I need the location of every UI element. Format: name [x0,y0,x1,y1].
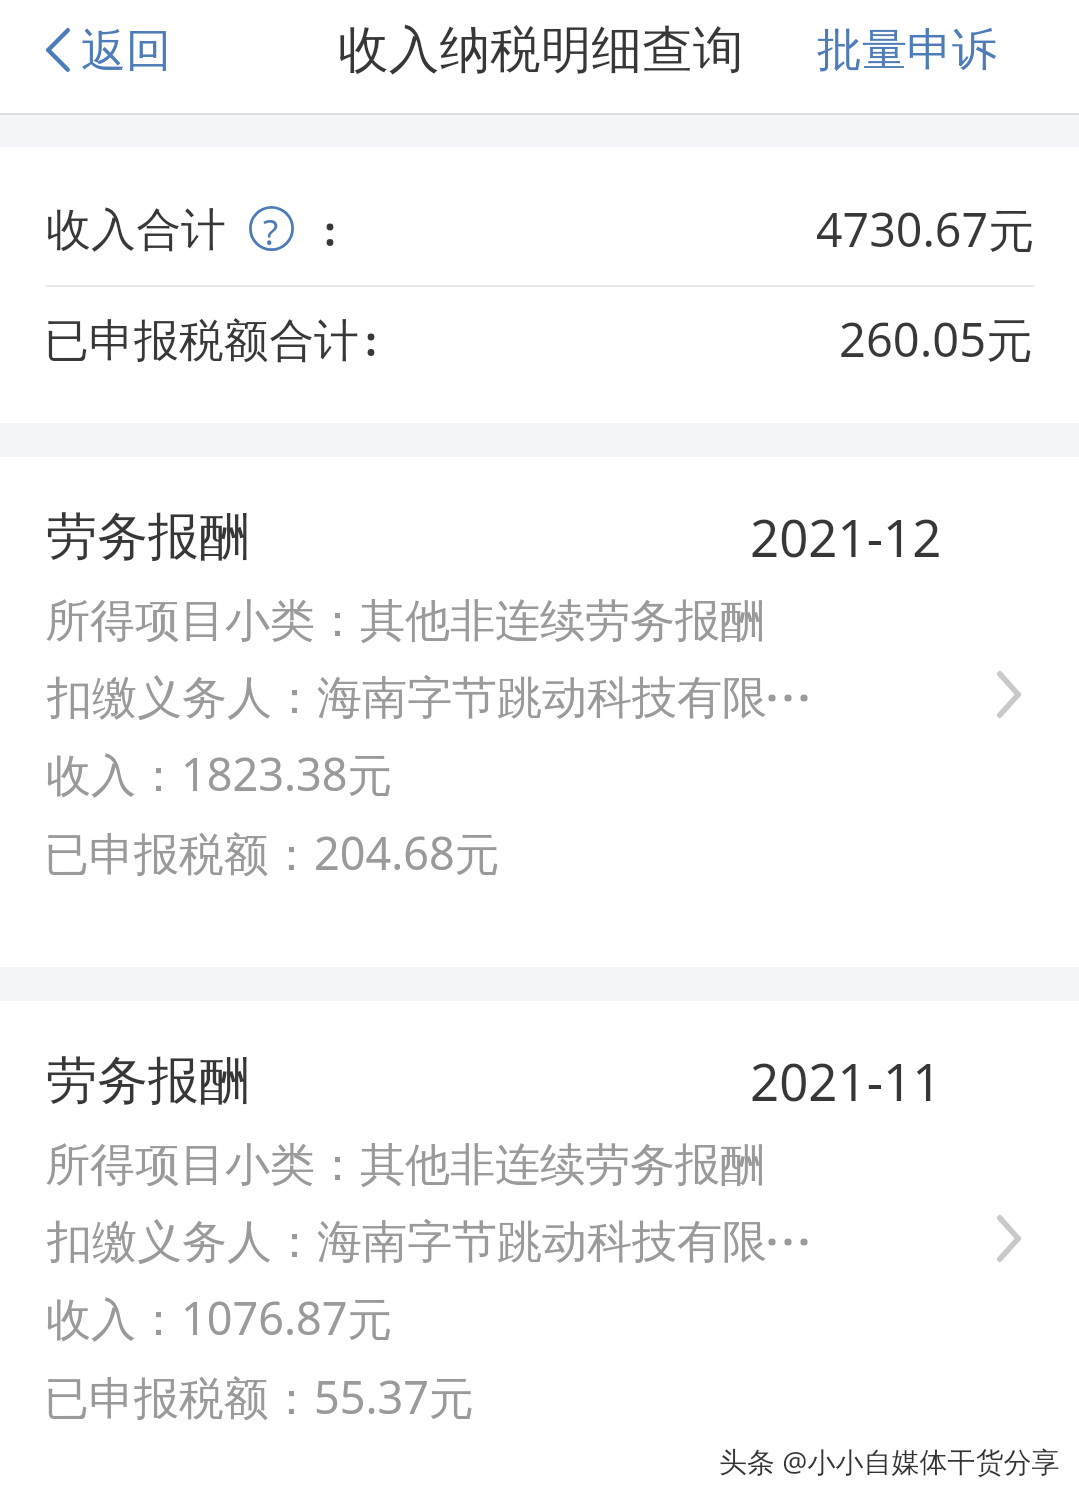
staticText: ? [263,208,279,256]
button[interactable]: 劳务报酬 [0,457,1079,967]
other: 查看明细 [997,1215,1021,1262]
button[interactable]: 收入合计说明 [243,200,300,257]
button[interactable]: 批量申诉 [800,0,1020,113]
staticText: 劳务报酬 [46,505,250,569]
staticText: 劳务报酬 [46,1049,250,1113]
staticText: 所得项目小类：其他非连续劳务报酬 [45,593,765,650]
staticText: 头条 @小小自媒体干货分享 [719,1442,1060,1480]
button[interactable]: 劳务报酬 [0,1001,1079,1502]
staticText: 已申报税额合计 [44,313,359,370]
staticText: 所得项目小类：其他非连续劳务报酬 [45,1137,765,1194]
other: 查看明细 [997,671,1021,718]
other: 返回 [46,28,70,72]
staticText: 收入纳税明细查询 [338,18,744,82]
staticText: 扣缴义务人：海南字节跳动科技有限 [47,670,767,727]
staticText: 批量申诉 [817,22,997,79]
staticText: 2021-11 [750,1046,942,1115]
staticText: 2021-12 [750,502,942,571]
staticText: 收入：1823.38元 [46,743,393,804]
staticText: 返回 [81,23,171,80]
staticText: 4730.67元 [816,197,1035,261]
staticText: 收入：1076.87元 [46,1287,393,1348]
button[interactable]: 返回 [30,0,190,113]
staticText: 260.05元 [839,307,1034,371]
staticText: 收入合计 [46,202,226,259]
staticText: 已申报税额：55.37元 [44,1366,475,1427]
staticText: 扣缴义务人：海南字节跳动科技有限 [47,1214,767,1271]
staticText: 已申报税额：204.68元 [44,822,500,883]
